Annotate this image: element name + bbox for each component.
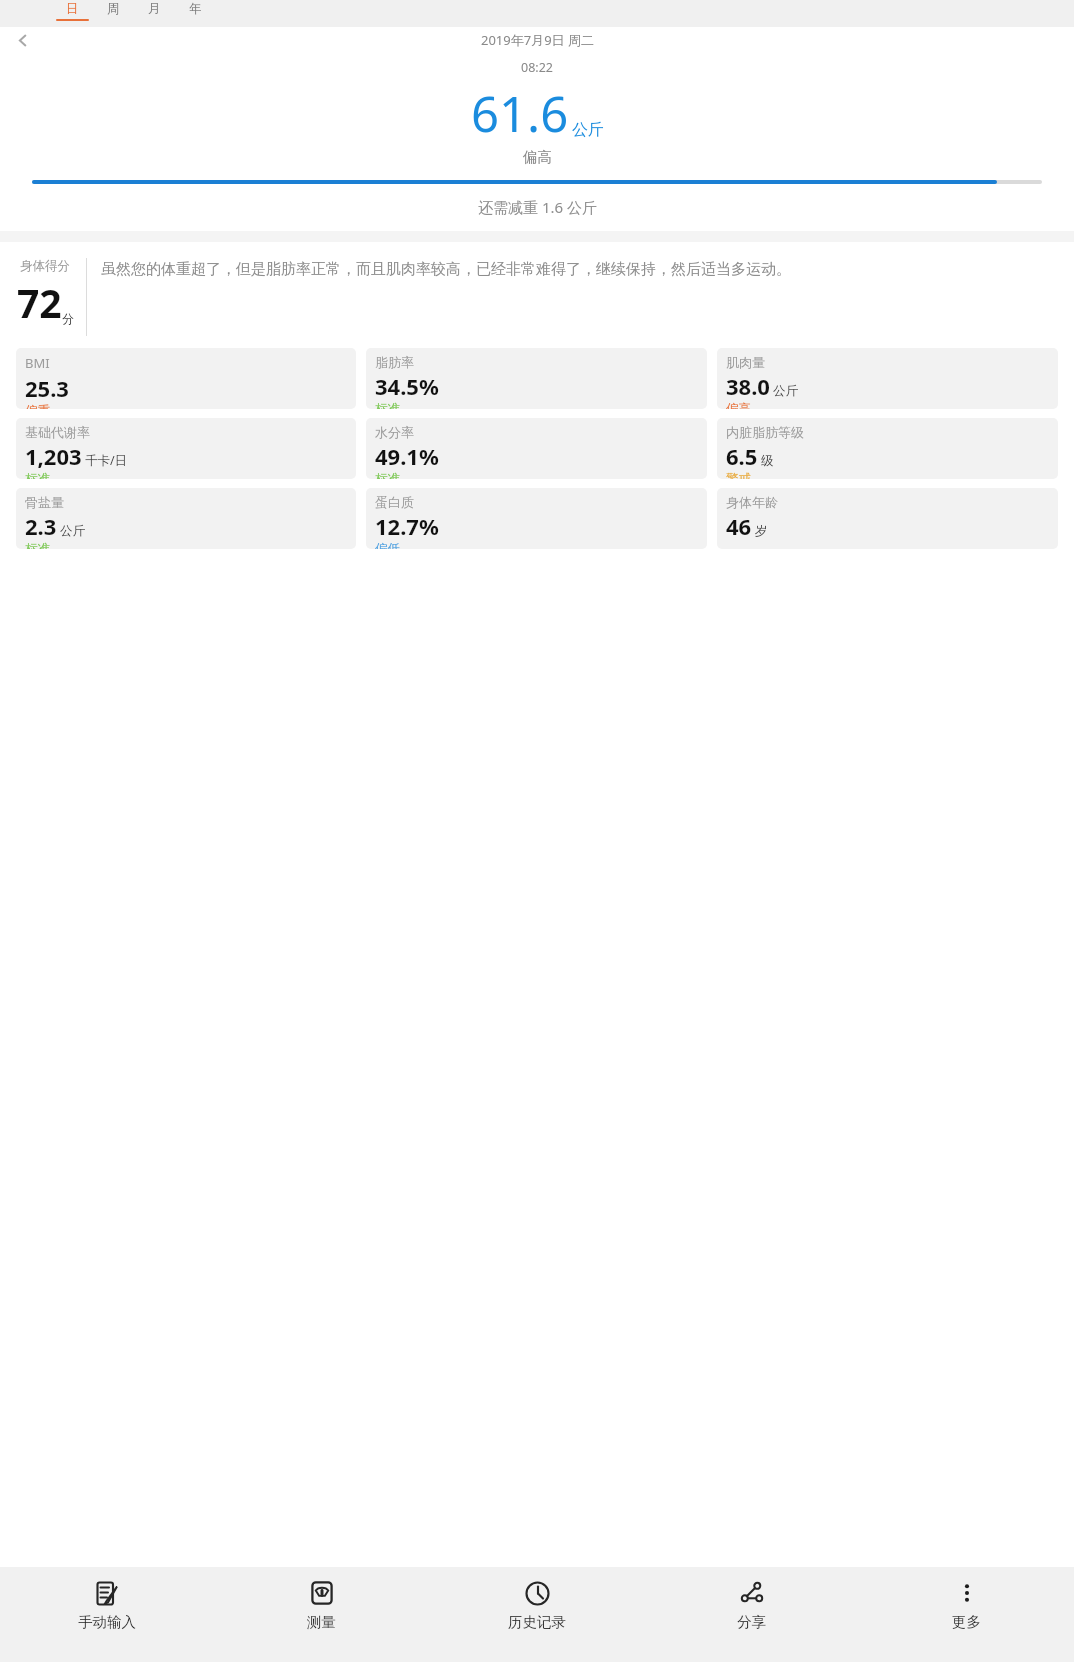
staticText: 周: [107, 1, 120, 17]
staticText: 6.5: [726, 441, 758, 471]
button[interactable]: 手动输入: [0, 1567, 214, 1662]
staticText: 34.5%: [375, 371, 439, 401]
button[interactable]: 身体年龄: [717, 488, 1058, 549]
staticText: 测量: [307, 1613, 336, 1631]
staticText: 46: [726, 511, 752, 541]
button[interactable]: More: [859, 1567, 1074, 1662]
staticText: 月: [148, 1, 161, 17]
button[interactable]: 日: [52, 0, 92, 27]
staticText: 61.6: [471, 80, 569, 147]
staticText: 警戒: [726, 471, 751, 479]
staticText: 脂肪率: [375, 354, 414, 370]
staticText: 水分率: [375, 424, 414, 440]
staticText: 2019年7月9日 周二: [481, 31, 594, 49]
staticText: 公斤: [572, 120, 604, 140]
button[interactable]: 月: [134, 0, 174, 27]
staticText: 标准: [25, 471, 50, 479]
button[interactable]: 年: [175, 0, 215, 27]
staticText: 还需减重 1.6 公斤: [478, 197, 597, 217]
staticText: 公斤: [773, 383, 798, 399]
staticText: 内脏脂肪等级: [726, 424, 804, 440]
staticText: 身体年龄: [726, 494, 778, 510]
button[interactable]: Back: [8, 27, 36, 53]
button[interactable]: 肌肉量: [717, 348, 1058, 409]
button[interactable]: 测量: [214, 1567, 429, 1662]
staticText: 岁: [755, 523, 768, 539]
staticText: 偏低: [375, 541, 400, 549]
staticText: 标准: [25, 541, 50, 549]
staticText: 1,203: [25, 441, 82, 471]
button[interactable]: 骨盐量: [16, 488, 356, 549]
staticText: 49.1%: [375, 441, 439, 471]
button[interactable]: 历史记录: [429, 1567, 644, 1662]
staticText: 骨盐量: [25, 494, 64, 510]
staticText: 身体得分: [20, 258, 70, 274]
staticText: BMI: [25, 354, 50, 372]
button[interactable]: 周: [93, 0, 133, 27]
staticText: 偏高: [726, 401, 751, 409]
staticText: 12.7%: [375, 511, 439, 541]
staticText: 偏重: [25, 403, 50, 409]
staticText: 历史记录: [508, 1613, 566, 1631]
staticText: 38.0: [726, 371, 770, 401]
staticText: 虽然您的体重超了，但是脂肪率正常，而且肌肉率较高，已经非常难得了，继续保持，然后…: [101, 260, 1060, 279]
staticText: 公斤: [60, 523, 85, 539]
other: More: [955, 1581, 979, 1605]
staticText: 08:22: [521, 59, 553, 76]
staticText: 肌肉量: [726, 354, 765, 370]
button[interactable]: 基础代谢率: [16, 418, 356, 479]
button[interactable]: 蛋白质: [366, 488, 707, 549]
staticText: 分: [62, 311, 74, 326]
staticText: 蛋白质: [375, 494, 414, 510]
staticText: 2.3: [25, 511, 57, 541]
staticText: 72: [17, 276, 62, 329]
button[interactable]: BMI: [16, 348, 356, 409]
staticText: 标准: [375, 401, 400, 409]
button[interactable]: 内脏脂肪等级: [717, 418, 1058, 479]
button[interactable]: 分享: [644, 1567, 859, 1662]
staticText: 偏高: [523, 148, 552, 166]
staticText: 级: [761, 453, 774, 469]
staticText: 日: [66, 1, 79, 17]
button[interactable]: 脂肪率: [366, 348, 707, 409]
button[interactable]: 水分率: [366, 418, 707, 479]
staticText: 千卡/日: [85, 452, 128, 469]
staticText: 分享: [737, 1613, 766, 1631]
staticText: 年: [189, 1, 202, 17]
staticText: 更多: [952, 1613, 981, 1631]
staticText: 25.3: [25, 373, 69, 403]
staticText: 标准: [375, 471, 400, 479]
staticText: 基础代谢率: [25, 424, 90, 440]
staticText: 手动输入: [78, 1613, 136, 1631]
